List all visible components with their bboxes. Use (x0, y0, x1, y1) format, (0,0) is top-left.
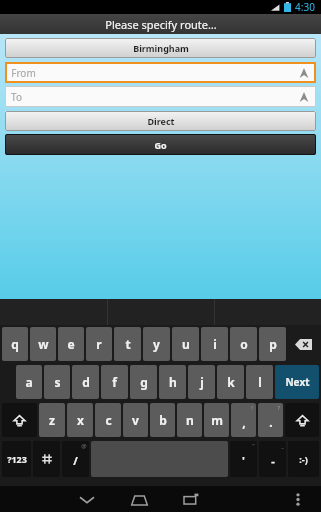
button[interactable]: t (114, 327, 141, 361)
staticText: Direct (147, 115, 175, 127)
button[interactable]: m (204, 403, 229, 437)
button[interactable]: ! (231, 403, 256, 437)
staticText: Next (285, 375, 310, 389)
staticText: Go (154, 139, 167, 151)
button[interactable]: Shift (285, 403, 319, 437)
staticText: u (182, 336, 190, 352)
button[interactable]: j (188, 365, 215, 399)
button[interactable]: u (172, 327, 199, 361)
staticText: Birmingham (133, 42, 189, 54)
button[interactable]: From (5, 62, 316, 83)
staticText: f (112, 374, 117, 390)
staticText: d (82, 374, 90, 390)
staticText: y (153, 336, 160, 352)
button[interactable]: ?123 (2, 441, 31, 477)
button[interactable]: e (58, 327, 84, 361)
staticText: p (269, 336, 277, 352)
button[interactable]: v (123, 403, 148, 437)
staticText: e (67, 336, 75, 352)
staticText: m (211, 412, 223, 428)
staticText: Please specify route… (105, 17, 217, 32)
button[interactable]: Birmingham (5, 38, 316, 58)
staticText: o (240, 336, 248, 352)
staticText: s (54, 374, 61, 390)
staticText: r (96, 336, 102, 352)
staticText: i (213, 336, 217, 352)
button[interactable]: z (39, 403, 65, 437)
staticText: w (38, 336, 49, 352)
staticText: , (242, 414, 246, 430)
button[interactable]: Direct (5, 111, 316, 131)
button[interactable]: _ (259, 441, 286, 477)
staticText: q (11, 336, 19, 352)
staticText: v (132, 412, 139, 428)
staticText: ?123 (7, 453, 27, 465)
button[interactable]: More options (274, 486, 321, 512)
button[interactable]: Next (275, 365, 319, 399)
button[interactable]: w (30, 327, 56, 361)
button[interactable]: Shift (2, 403, 37, 437)
staticText: t (125, 336, 131, 352)
staticText: @ (81, 442, 87, 450)
button[interactable]: :-) (288, 441, 319, 477)
staticText: b (159, 412, 167, 428)
button[interactable]: Go (5, 134, 316, 155)
button[interactable]: Home (113, 486, 165, 512)
button[interactable]: Use current location (297, 90, 311, 104)
button[interactable]: f (101, 365, 128, 399)
button[interactable]: g (130, 365, 157, 399)
staticText: a (25, 374, 33, 390)
staticText: j (200, 374, 204, 390)
button[interactable]: y (143, 327, 170, 361)
staticText: x (77, 412, 84, 428)
button[interactable]: c (95, 403, 121, 437)
staticText: " (252, 442, 255, 450)
staticText: _ (281, 442, 284, 450)
button[interactable]: " (230, 441, 257, 477)
staticText: n (186, 412, 194, 428)
staticText: - (271, 453, 275, 468)
button[interactable]: To (5, 86, 316, 107)
button[interactable]: a (16, 365, 42, 399)
staticText: From (11, 66, 36, 80)
staticText: 4:30 (295, 0, 315, 14)
staticText: ? (277, 404, 280, 412)
staticText: h (169, 374, 177, 390)
button[interactable]: Input method settings (33, 441, 60, 477)
button[interactable]: Recent apps (165, 486, 217, 512)
button[interactable]: r (86, 327, 112, 361)
staticText: . (269, 414, 273, 430)
button[interactable]: l (246, 365, 273, 399)
staticText: / (73, 453, 78, 468)
button[interactable]: p (259, 327, 286, 361)
button[interactable]: ? (258, 403, 283, 437)
button[interactable]: k (217, 365, 244, 399)
button[interactable]: Use current location (297, 66, 311, 80)
staticText: k (227, 374, 235, 390)
button[interactable]: b (150, 403, 175, 437)
button[interactable]: @ (62, 441, 89, 477)
staticText: c (105, 412, 112, 428)
button[interactable]: n (177, 403, 202, 437)
staticText: z (49, 412, 55, 428)
button[interactable]: Hide keyboard (61, 486, 113, 512)
button[interactable]: h (159, 365, 186, 399)
button[interactable]: Backspace (288, 327, 319, 361)
button[interactable]: x (67, 403, 93, 437)
button[interactable]: q (2, 327, 28, 361)
button[interactable]: o (230, 327, 257, 361)
button[interactable]: i (201, 327, 228, 361)
staticText: ! (251, 404, 253, 412)
staticText: :-) (299, 453, 308, 465)
staticText: To (11, 90, 22, 104)
staticText: l (258, 374, 262, 390)
button[interactable]: s (44, 365, 70, 399)
staticText: g (140, 374, 148, 390)
staticText: ' (242, 453, 245, 468)
button[interactable]: d (72, 365, 99, 399)
